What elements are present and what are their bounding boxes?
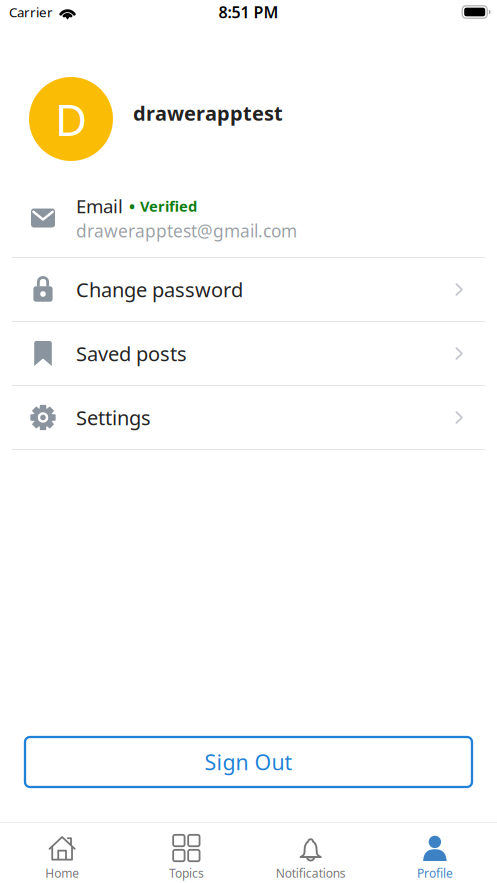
button[interactable]: Notifications xyxy=(248,822,373,883)
button[interactable]: Change password xyxy=(0,258,497,321)
staticText: Verified xyxy=(140,196,197,216)
button[interactable]: Settings xyxy=(0,386,497,449)
staticText: Profile xyxy=(417,865,453,881)
staticText: • xyxy=(129,195,135,217)
staticText: Carrier xyxy=(9,3,53,21)
staticText: D xyxy=(55,90,87,148)
staticText: Email xyxy=(76,194,123,218)
button[interactable]: Email xyxy=(0,193,497,257)
staticText: Notifications xyxy=(276,865,346,881)
button[interactable]: Saved posts xyxy=(0,322,497,385)
button[interactable]: Profile xyxy=(373,822,497,883)
button[interactable]: Sign Out xyxy=(25,737,472,787)
button[interactable]: Topics xyxy=(124,822,248,883)
staticText: 8:51 PM xyxy=(218,1,278,23)
staticText: Topics xyxy=(169,865,204,881)
staticText: Sign Out xyxy=(204,748,292,776)
button[interactable]: Home xyxy=(0,822,124,883)
staticText: drawerapptest xyxy=(133,100,283,126)
staticText: drawerapptest@gmail.com xyxy=(76,219,297,242)
staticText: Settings xyxy=(76,404,151,431)
staticText: Change password xyxy=(76,276,243,303)
staticText: Saved posts xyxy=(76,340,187,367)
staticText: Home xyxy=(45,865,79,881)
